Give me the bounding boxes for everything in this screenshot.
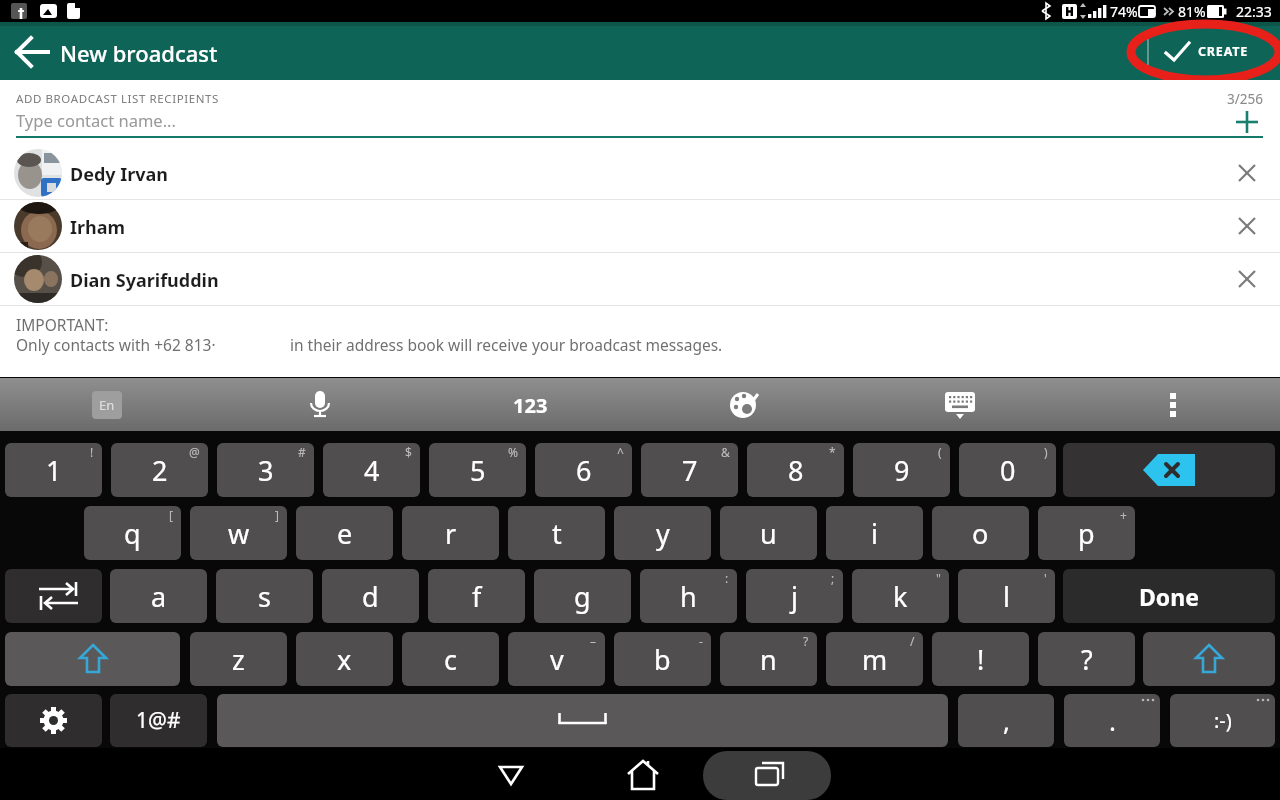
button[interactable]: 8 <box>747 443 844 497</box>
button[interactable]: l <box>958 569 1055 623</box>
button[interactable]: 4 <box>323 443 420 497</box>
button[interactable]: Dian Syarifuddin <box>0 253 1280 306</box>
button[interactable]: z <box>190 632 287 686</box>
staticText: " <box>936 570 941 586</box>
button[interactable]: q <box>84 506 181 560</box>
staticText: f <box>472 578 482 615</box>
staticText: New broadcast <box>60 38 218 68</box>
button[interactable] <box>217 694 948 747</box>
button[interactable]: Irham <box>0 200 1280 253</box>
button[interactable] <box>1143 632 1275 686</box>
staticText: Dedy Irvan <box>70 162 169 187</box>
button[interactable]: 0 <box>959 443 1056 497</box>
button[interactable]: , <box>958 694 1054 747</box>
staticText: Only contacts with +62 813· <box>16 334 216 355</box>
staticText: CREATE <box>1198 43 1249 60</box>
staticText: 4 <box>364 452 380 489</box>
button[interactable]: h <box>640 569 737 623</box>
staticText: – <box>590 633 597 649</box>
button[interactable]: c <box>402 632 499 686</box>
button[interactable]: ? <box>1038 632 1135 686</box>
button[interactable]: f <box>428 569 525 623</box>
button[interactable]: ! <box>932 632 1029 686</box>
button[interactable]: d <box>322 569 419 623</box>
button[interactable] <box>1227 206 1267 246</box>
staticText: z <box>232 641 245 678</box>
button[interactable]: p <box>1038 506 1135 560</box>
button[interactable]: w <box>190 506 287 560</box>
staticText: + <box>1120 507 1127 523</box>
staticText: b <box>654 641 671 678</box>
staticText: r <box>445 515 457 552</box>
button[interactable]: En <box>92 391 122 419</box>
button[interactable] <box>481 748 541 800</box>
button[interactable]: 3 <box>217 443 314 497</box>
button[interactable]: v <box>508 632 605 686</box>
button[interactable]: 1 <box>5 443 102 497</box>
button[interactable]: x <box>296 632 393 686</box>
button[interactable]: u <box>720 506 817 560</box>
button[interactable]: j <box>746 569 843 623</box>
staticText: u <box>760 515 777 552</box>
button[interactable]: b <box>614 632 711 686</box>
button[interactable] <box>738 748 798 800</box>
button[interactable] <box>1063 443 1275 497</box>
staticText: & <box>721 444 730 460</box>
staticText: c <box>444 641 457 678</box>
button[interactable]: e <box>296 506 393 560</box>
staticText: 7 <box>682 452 698 489</box>
staticText: Type contact name... <box>16 109 176 131</box>
button[interactable] <box>1227 259 1267 299</box>
button[interactable]: Dedy Irvan <box>0 147 1280 200</box>
button[interactable] <box>613 748 673 800</box>
button[interactable]: g <box>534 569 631 623</box>
button[interactable]: y <box>614 506 711 560</box>
button[interactable]: . <box>1064 694 1160 747</box>
staticText: ? <box>1081 641 1093 678</box>
button[interactable]: o <box>932 506 1029 560</box>
button[interactable]: s <box>216 569 313 623</box>
staticText: $ <box>405 444 412 460</box>
staticText: ^ <box>617 444 624 460</box>
staticText: / <box>910 633 915 649</box>
staticText: m <box>862 641 888 678</box>
button[interactable] <box>1227 153 1267 193</box>
staticText: 2 <box>152 452 168 489</box>
button[interactable]: :-) <box>1170 694 1275 747</box>
staticText: x <box>337 641 352 678</box>
staticText: % <box>508 444 518 460</box>
staticText: En <box>99 396 115 414</box>
staticText: q <box>124 515 141 552</box>
button[interactable]: m <box>826 632 923 686</box>
button[interactable]: 9 <box>853 443 950 497</box>
button[interactable]: Done <box>1063 569 1275 623</box>
staticText: - <box>699 633 703 649</box>
button[interactable] <box>300 385 340 425</box>
button[interactable] <box>5 694 102 747</box>
button[interactable]: a <box>110 569 207 623</box>
staticText: Irham <box>70 215 126 240</box>
button[interactable]: 1@# <box>110 694 207 747</box>
button[interactable] <box>5 632 180 686</box>
button[interactable] <box>940 385 980 425</box>
staticText: 1@# <box>136 706 181 735</box>
button[interactable] <box>1153 385 1193 425</box>
button[interactable]: 6 <box>535 443 632 497</box>
staticText: :-) <box>1214 707 1232 734</box>
button[interactable] <box>1228 103 1266 141</box>
staticText: ! <box>90 444 94 460</box>
button[interactable] <box>8 30 56 74</box>
button[interactable] <box>725 385 765 425</box>
staticText: 6 <box>576 452 592 489</box>
button[interactable]: i <box>826 506 923 560</box>
button[interactable]: 7 <box>641 443 738 497</box>
button[interactable]: 5 <box>429 443 526 497</box>
button[interactable]: 2 <box>111 443 208 497</box>
button[interactable] <box>5 569 102 623</box>
staticText: p <box>1078 515 1095 552</box>
button[interactable]: CREATE <box>1152 30 1272 74</box>
button[interactable]: r <box>402 506 499 560</box>
button[interactable]: t <box>508 506 605 560</box>
button[interactable]: k <box>852 569 949 623</box>
button[interactable]: n <box>720 632 817 686</box>
